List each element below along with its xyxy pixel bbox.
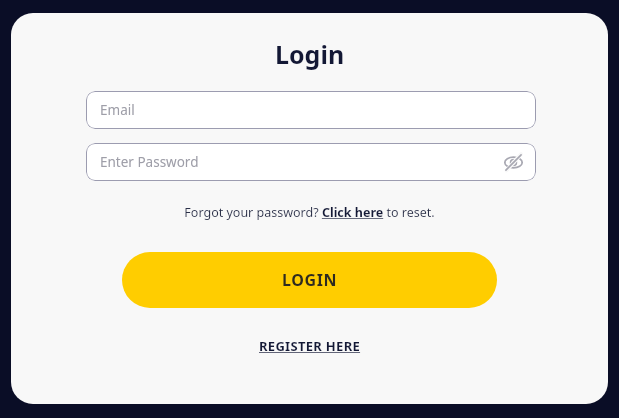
button[interactable]: Enter Password	[86, 143, 536, 181]
button[interactable]: LOGIN	[122, 252, 497, 308]
staticText: LOGIN	[282, 269, 338, 291]
staticText: Enter Password	[100, 153, 502, 171]
button[interactable]: Email	[86, 91, 536, 129]
button[interactable]: REGISTER HERE	[259, 337, 361, 355]
staticText: Email	[100, 101, 524, 119]
staticText: Login	[275, 37, 345, 71]
button[interactable]: Show password	[502, 151, 524, 173]
button[interactable]: Forgot your password? Click here to rese…	[184, 204, 435, 221]
